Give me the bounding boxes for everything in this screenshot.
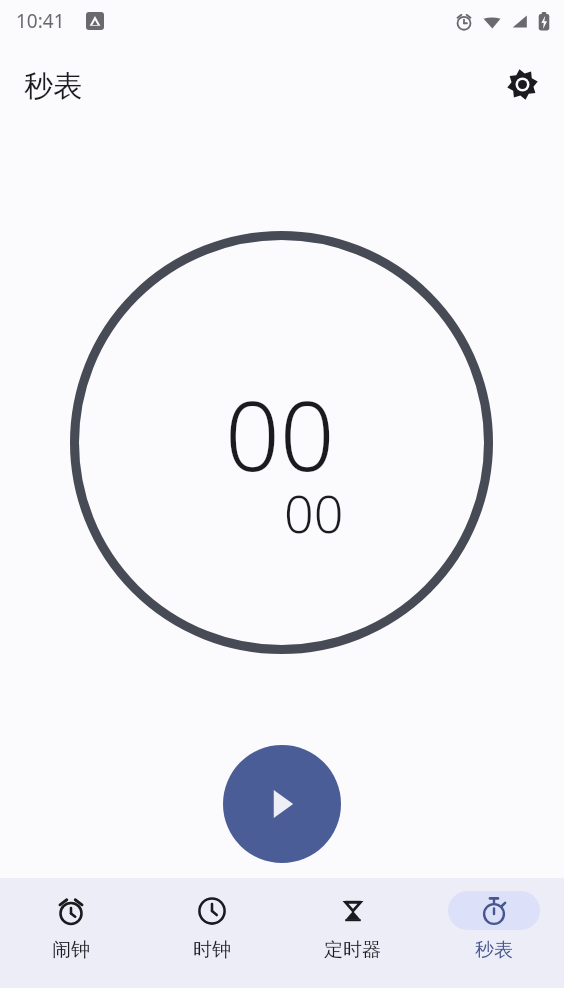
staticText: 秒表 bbox=[24, 68, 82, 105]
button[interactable]: 秒表 bbox=[423, 878, 564, 988]
button[interactable]: 定时器 bbox=[282, 878, 423, 988]
staticText: 秒表 bbox=[475, 938, 513, 962]
staticText: 闹钟 bbox=[52, 938, 90, 962]
staticText: 00 bbox=[225, 368, 335, 499]
staticText: 10:41 bbox=[16, 8, 65, 34]
button[interactable]: 设置 bbox=[498, 60, 546, 108]
staticText: 00 bbox=[284, 477, 344, 548]
button[interactable]: 开始 bbox=[223, 745, 341, 863]
staticText: 定时器 bbox=[324, 938, 381, 962]
staticText: 时钟 bbox=[193, 938, 231, 962]
button[interactable]: 时钟 bbox=[141, 878, 282, 988]
button[interactable]: 闹钟 bbox=[0, 878, 141, 988]
